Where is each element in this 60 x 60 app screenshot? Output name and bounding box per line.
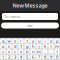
staticText: f xyxy=(20,44,21,49)
button[interactable]: 8 xyxy=(42,55,48,59)
button[interactable]: 6 xyxy=(30,55,36,59)
button[interactable]: y xyxy=(30,39,36,43)
button[interactable]: v xyxy=(18,49,24,54)
staticText: , xyxy=(44,49,45,54)
staticText: 7 xyxy=(38,54,40,59)
staticText: m xyxy=(55,44,59,49)
staticText: . xyxy=(50,49,51,54)
button[interactable]: 0 xyxy=(54,55,60,59)
staticText: g xyxy=(26,44,28,49)
button[interactable]: 9 xyxy=(48,55,54,59)
staticText: 3 xyxy=(14,54,16,59)
staticText: l xyxy=(50,44,51,49)
button[interactable]: To: name xyxy=(2,13,58,20)
staticText: h xyxy=(32,44,34,49)
staticText: / xyxy=(56,49,57,54)
staticText: m xyxy=(37,49,41,54)
staticText: 1 xyxy=(2,54,4,59)
button[interactable]: d xyxy=(12,44,18,49)
button[interactable]: j xyxy=(36,44,42,49)
button[interactable]: q xyxy=(0,39,6,43)
button[interactable]: m xyxy=(36,49,42,54)
staticText: 2 xyxy=(8,54,10,59)
staticText: 8 xyxy=(44,54,46,59)
button[interactable]: a xyxy=(0,44,6,49)
button[interactable]: g xyxy=(24,44,30,49)
button[interactable]: 5 xyxy=(24,55,30,59)
staticText: d xyxy=(14,44,16,49)
staticText: 9 xyxy=(50,54,52,59)
button[interactable]: s xyxy=(6,44,12,49)
staticText: New Message xyxy=(12,2,47,9)
button[interactable]: m xyxy=(54,44,60,49)
staticText: t xyxy=(26,38,27,44)
staticText: v xyxy=(20,49,22,54)
button[interactable]: i xyxy=(42,39,48,43)
button[interactable]: , xyxy=(42,49,48,54)
staticText: p xyxy=(56,38,58,44)
staticText: s xyxy=(8,44,10,49)
staticText: i xyxy=(44,38,45,44)
staticText: 0 xyxy=(56,54,58,59)
button[interactable]: / xyxy=(54,49,60,54)
staticText: 6 xyxy=(32,54,34,59)
button[interactable]: abc xyxy=(1,22,59,28)
staticText: u xyxy=(38,38,40,44)
button[interactable]: o xyxy=(48,39,54,43)
staticText: To: name xyxy=(4,14,20,19)
button[interactable]: 7 xyxy=(36,55,42,59)
button[interactable]: h xyxy=(30,44,36,49)
button[interactable]: 3 xyxy=(12,55,18,59)
staticText: c xyxy=(14,49,16,54)
staticText: z xyxy=(2,49,4,54)
staticText: q xyxy=(2,38,4,44)
staticText: r xyxy=(20,38,22,44)
staticText: n xyxy=(32,49,34,54)
button[interactable]: k xyxy=(42,44,48,49)
button[interactable]: w xyxy=(6,39,12,43)
button[interactable]: . xyxy=(48,49,54,54)
staticText: w xyxy=(7,38,10,44)
button[interactable]: n xyxy=(30,49,36,54)
button[interactable]: f xyxy=(18,44,24,49)
staticText: y xyxy=(32,38,34,44)
button[interactable]: 4 xyxy=(18,55,24,59)
button[interactable]: l xyxy=(48,44,54,49)
staticText: b xyxy=(26,49,28,54)
button[interactable]: b xyxy=(24,49,30,54)
button[interactable]: 2 xyxy=(6,55,12,59)
button[interactable]: z xyxy=(0,49,6,54)
button[interactable]: t xyxy=(24,39,30,43)
staticText: x xyxy=(8,49,10,54)
staticText: 4 xyxy=(20,54,22,59)
button[interactable]: u xyxy=(36,39,42,43)
staticText: e xyxy=(14,38,16,44)
staticText: a xyxy=(2,44,4,49)
staticText: abc xyxy=(27,23,33,28)
button[interactable]: c xyxy=(12,49,18,54)
staticText: o xyxy=(50,38,52,44)
button[interactable]: p xyxy=(54,39,60,43)
button[interactable]: r xyxy=(18,39,24,43)
staticText: k xyxy=(44,44,46,49)
button[interactable]: 1 xyxy=(0,55,6,59)
staticText: 5 xyxy=(26,54,28,59)
staticText: j xyxy=(38,44,39,49)
button[interactable]: x xyxy=(6,49,12,54)
button[interactable]: e xyxy=(12,39,18,43)
